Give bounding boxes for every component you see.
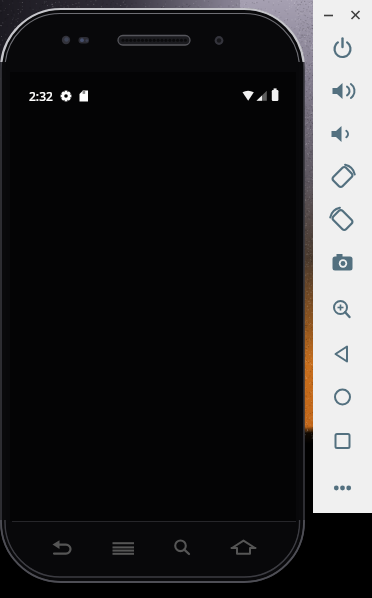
button[interactable]: [320, 70, 365, 112]
button[interactable]: [320, 376, 365, 418]
button[interactable]: [106, 534, 142, 562]
button[interactable]: [166, 534, 200, 562]
button[interactable]: [320, 333, 365, 375]
staticText: 2:32: [29, 88, 53, 104]
button[interactable]: [320, 289, 365, 331]
button[interactable]: [320, 113, 365, 155]
button[interactable]: [44, 534, 82, 562]
button[interactable]: [320, 242, 365, 284]
button[interactable]: [320, 6, 337, 24]
button[interactable]: [228, 534, 262, 562]
button[interactable]: [320, 27, 365, 69]
button[interactable]: [320, 420, 365, 462]
button[interactable]: [320, 156, 365, 198]
button[interactable]: [320, 467, 365, 509]
button[interactable]: [347, 6, 364, 24]
button[interactable]: [320, 199, 365, 241]
